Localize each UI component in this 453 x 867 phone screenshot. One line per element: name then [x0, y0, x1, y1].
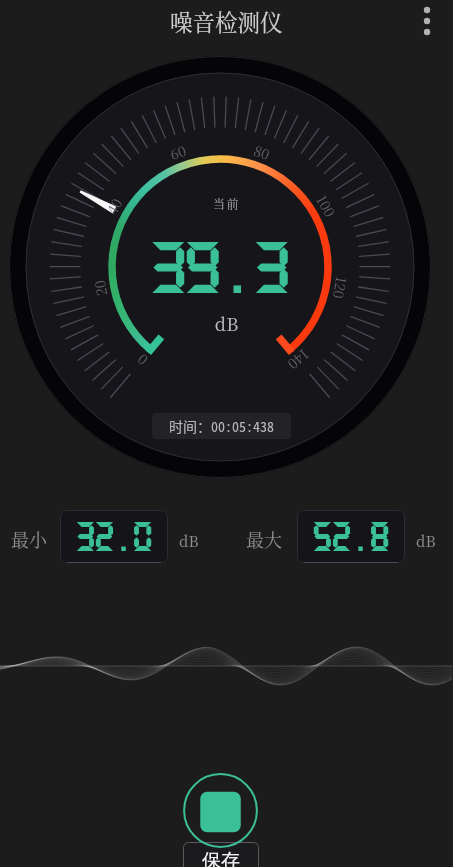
staticText: 20	[89, 278, 111, 298]
staticText: 最大	[246, 526, 282, 552]
staticText: 120	[329, 275, 352, 301]
staticText: dB	[179, 530, 199, 552]
staticText: 当前	[0, 195, 453, 212]
staticText: 时间：00:05:438	[169, 416, 274, 436]
button[interactable]: More options	[407, 1, 447, 41]
button[interactable]: Stop recording	[183, 773, 258, 848]
staticText: dB	[0, 310, 453, 336]
staticText: 0	[132, 350, 151, 370]
staticText: 保存	[202, 849, 240, 867]
button[interactable]: 保存	[183, 842, 259, 867]
staticText: 80	[251, 140, 273, 164]
staticText: 最小	[11, 526, 47, 552]
staticText: dB	[416, 530, 436, 552]
staticText: 140	[283, 345, 314, 375]
staticText: 60	[167, 140, 189, 164]
staticText: 40	[101, 194, 127, 218]
staticText: 噪音检测仪	[170, 5, 283, 37]
staticText: 100	[312, 191, 341, 221]
